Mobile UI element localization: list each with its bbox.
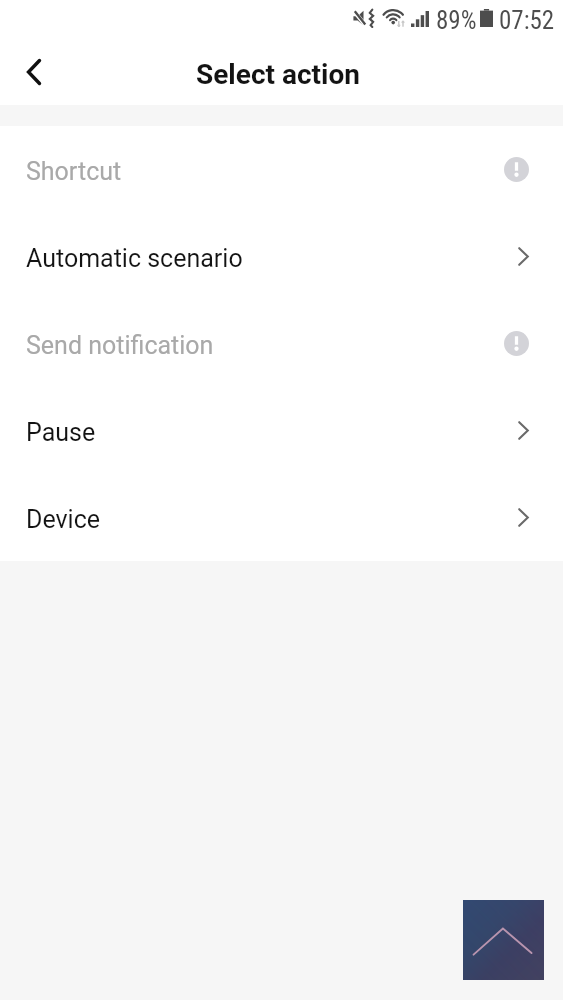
staticText: 07:52 [499, 6, 555, 35]
staticText: Shortcut [26, 157, 122, 186]
button[interactable]: Device [0, 474, 563, 561]
staticText: Select action [196, 58, 360, 91]
staticText: 89% [436, 6, 477, 35]
staticText: Send notification [26, 331, 214, 360]
staticText: Automatic scenario [26, 244, 243, 273]
button[interactable]: Send notification [0, 300, 563, 387]
button[interactable]: Navigate up [9, 47, 58, 96]
button[interactable]: Preview thumbnail [463, 900, 544, 980]
staticText: Device [26, 505, 101, 534]
button[interactable]: Automatic scenario [0, 213, 563, 300]
button[interactable]: Shortcut [0, 126, 563, 213]
staticText: Pause [26, 418, 96, 447]
button[interactable]: Pause [0, 387, 563, 474]
